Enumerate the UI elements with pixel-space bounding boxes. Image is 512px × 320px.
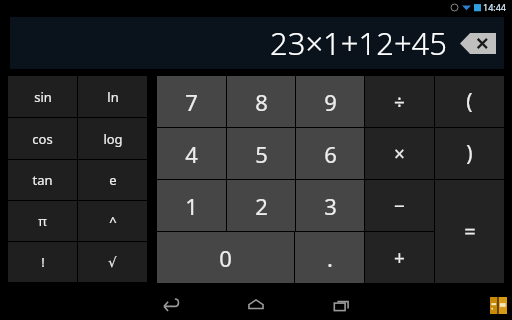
button[interactable]: 9 [296, 76, 364, 127]
button[interactable]: − [365, 180, 434, 231]
button[interactable]: ln [78, 76, 147, 117]
staticText: = [464, 218, 476, 245]
button[interactable]: Recent apps [328, 292, 354, 318]
button[interactable]: Home [243, 292, 269, 318]
staticText: × [394, 141, 405, 167]
staticText: ln [107, 88, 119, 106]
button[interactable]: 2 [227, 180, 295, 231]
staticText: tan [32, 171, 53, 189]
button[interactable]: Calculator app [488, 295, 508, 315]
button[interactable]: ! [8, 242, 77, 282]
staticText: 5 [255, 139, 268, 169]
button[interactable]: √ [78, 242, 147, 282]
button[interactable]: ( [435, 76, 504, 127]
button[interactable]: × [365, 128, 434, 179]
button[interactable]: log [78, 118, 147, 159]
button[interactable]: ) [435, 128, 504, 179]
staticText: − [394, 193, 405, 219]
staticText: 9 [324, 87, 337, 117]
staticText: 8 [255, 87, 268, 117]
button[interactable]: Back [158, 292, 184, 318]
button[interactable]: ^ [78, 201, 147, 241]
staticText: 4 [185, 139, 198, 169]
staticText: 6 [324, 139, 337, 169]
button[interactable]: Backspace [460, 33, 496, 54]
staticText: ) [466, 139, 473, 168]
button[interactable]: . [295, 232, 364, 283]
button[interactable]: sin [8, 76, 77, 117]
button[interactable]: = [435, 180, 504, 283]
staticText: π [38, 212, 47, 230]
staticText: 7 [185, 87, 198, 117]
staticText: . [327, 243, 333, 273]
button[interactable]: 3 [296, 180, 364, 231]
staticText: ÷ [394, 89, 405, 115]
button[interactable]: 4 [157, 128, 226, 179]
staticText: e [109, 171, 117, 189]
button[interactable]: cos [8, 118, 77, 159]
staticText: 1 [185, 191, 198, 221]
staticText: √ [108, 255, 117, 270]
staticText: sin [34, 88, 52, 106]
button[interactable]: 6 [296, 128, 364, 179]
staticText: + [394, 245, 405, 271]
button[interactable]: 5 [227, 128, 295, 179]
button[interactable]: + [365, 232, 434, 283]
button[interactable]: 7 [157, 76, 226, 127]
button[interactable]: e [78, 160, 147, 200]
staticText: 3 [324, 191, 337, 221]
button[interactable]: π [8, 201, 77, 241]
staticText: 2 [255, 191, 268, 221]
staticText: ! [41, 253, 45, 271]
button[interactable]: 0 [157, 232, 294, 283]
button[interactable]: ÷ [365, 76, 434, 127]
button[interactable]: tan [8, 160, 77, 200]
staticText: cos [32, 130, 53, 148]
staticText: 14:44 [483, 1, 507, 13]
button[interactable]: 23×1+12+45 [10, 17, 504, 69]
staticText: 0 [219, 243, 232, 273]
staticText: ( [466, 87, 473, 116]
button[interactable]: 1 [157, 180, 226, 231]
staticText: 23×1+12+45 [270, 22, 448, 64]
staticText: log [103, 130, 123, 148]
button[interactable]: 8 [227, 76, 295, 127]
staticText: ^ [109, 212, 117, 230]
